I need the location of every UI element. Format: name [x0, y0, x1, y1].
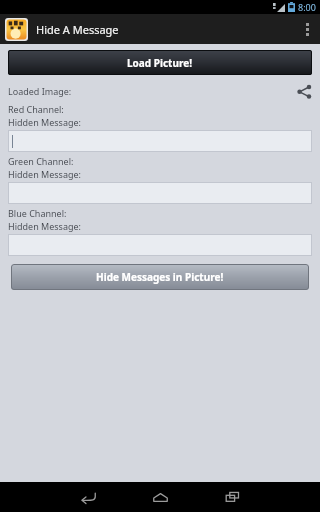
staticText: Blue Channel: [8, 207, 67, 219]
button[interactable]: Hide Messages in Picture! [11, 264, 309, 290]
button[interactable] [8, 130, 312, 152]
staticText: Green Channel: [8, 155, 74, 167]
button[interactable] [8, 234, 312, 256]
staticText: Hidden Message: [8, 220, 81, 232]
staticText: Load Picture! [127, 56, 193, 70]
staticText: Loaded Image: [8, 85, 72, 97]
staticText: Hidden Message: [8, 116, 81, 128]
button[interactable]: More options [294, 14, 320, 44]
staticText: Hide A Message [36, 22, 119, 37]
button[interactable]: Load Picture! [8, 50, 312, 75]
button[interactable]: Share [293, 81, 315, 101]
button[interactable]: Back [52, 482, 124, 512]
staticText: Hidden Message: [8, 168, 81, 180]
button[interactable]: Recent apps [196, 482, 268, 512]
button[interactable] [8, 182, 312, 204]
staticText: Hide Messages in Picture! [96, 270, 224, 284]
staticText: Red Channel: [8, 103, 64, 115]
button[interactable]: Home [124, 482, 196, 512]
staticText: 8:00 [298, 1, 316, 13]
